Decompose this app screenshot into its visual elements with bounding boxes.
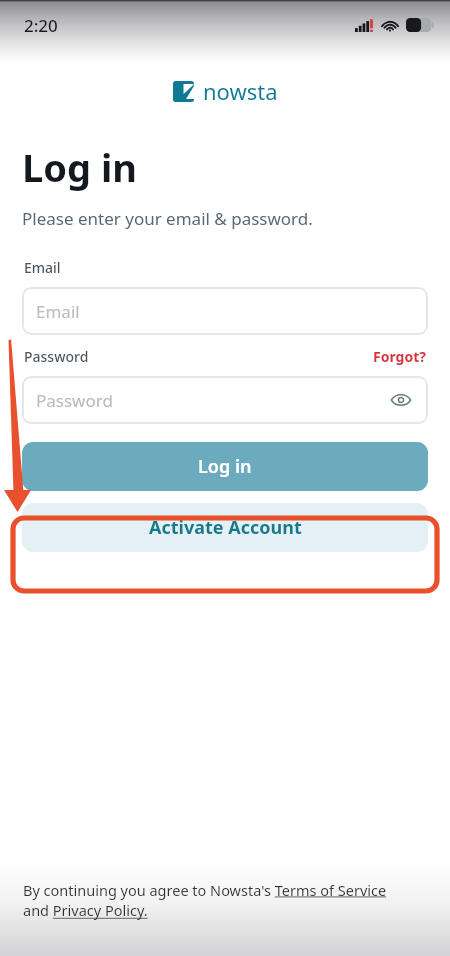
button[interactable]: Log in	[22, 442, 428, 491]
button[interactable]: Forgot?	[373, 347, 426, 366]
button[interactable]: Show password	[384, 383, 418, 417]
staticText: Email	[24, 258, 61, 277]
button[interactable]: By continuing you agree to Nowsta's Term…	[23, 880, 387, 921]
staticText: Forgot?	[373, 347, 426, 366]
button[interactable]: Activate Account	[22, 503, 428, 552]
staticText: Please enter your email & password.	[22, 207, 313, 230]
staticText: Activate Account	[149, 515, 302, 540]
button[interactable]: Email	[22, 287, 428, 335]
staticText: Password	[36, 389, 113, 412]
staticText: Password	[24, 347, 89, 366]
staticText: Log in	[22, 141, 137, 193]
staticText: nowsta	[203, 76, 278, 106]
staticText: 2:20	[24, 14, 58, 37]
staticText: Email	[36, 300, 80, 323]
button[interactable]: Password	[22, 376, 428, 424]
staticText: Log in	[198, 454, 252, 479]
